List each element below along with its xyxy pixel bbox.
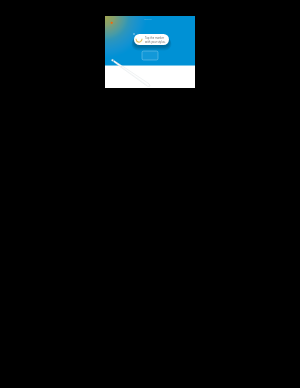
button[interactable]: Tap the marker xyxy=(134,34,169,45)
staticText: with your stylus. xyxy=(145,40,166,44)
button[interactable]: Sketch xyxy=(105,16,195,88)
staticText: Sketch xyxy=(144,17,152,20)
staticText: Tap the marker xyxy=(145,36,165,40)
